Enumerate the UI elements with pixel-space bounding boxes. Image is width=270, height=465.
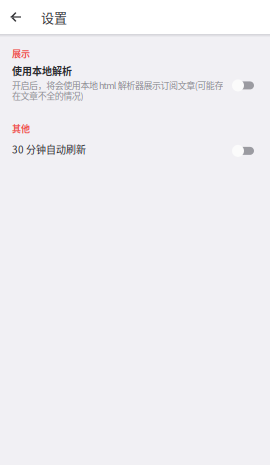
staticText: 开启后，将会使用本地 html 解析器展示订阅文章(可能存在文章不全的情况) xyxy=(12,80,223,101)
button[interactable]: 使用本地解析 xyxy=(12,63,254,101)
button[interactable]: Back xyxy=(0,0,41,35)
button[interactable]: 30 分钟自动刷新 xyxy=(12,141,254,157)
staticText: 其他 xyxy=(12,122,30,135)
staticText: 使用本地解析 xyxy=(12,63,72,78)
staticText: 展示 xyxy=(12,47,30,60)
staticText: 设置 xyxy=(41,7,67,26)
staticText: 30 分钟自动刷新 xyxy=(12,142,86,156)
